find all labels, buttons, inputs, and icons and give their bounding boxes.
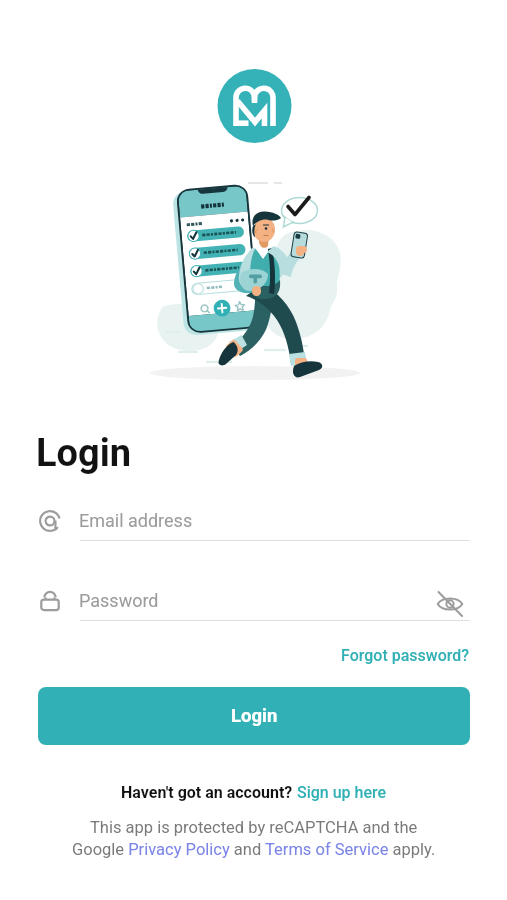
button[interactable]: Forgot password? — [320, 642, 470, 668]
button[interactable]: Password — [0, 582, 507, 630]
staticText: Haven't got an account? — [121, 783, 297, 802]
button[interactable]: Sign up here — [297, 783, 387, 802]
staticText: Login — [231, 705, 278, 727]
staticText: Sign up here — [297, 783, 387, 802]
staticText: Google Privacy Policy and Terms of Servi… — [72, 840, 436, 859]
staticText: Email address — [79, 510, 193, 531]
button[interactable]: Show password — [430, 584, 470, 624]
staticText: Forgot password? — [341, 646, 470, 665]
staticText: Login — [36, 431, 132, 476]
staticText: Password — [79, 590, 159, 611]
button[interactable]: Email address — [0, 502, 507, 550]
button[interactable]: Login — [38, 687, 470, 745]
staticText: This app is protected by reCAPTCHA and t… — [90, 818, 418, 837]
